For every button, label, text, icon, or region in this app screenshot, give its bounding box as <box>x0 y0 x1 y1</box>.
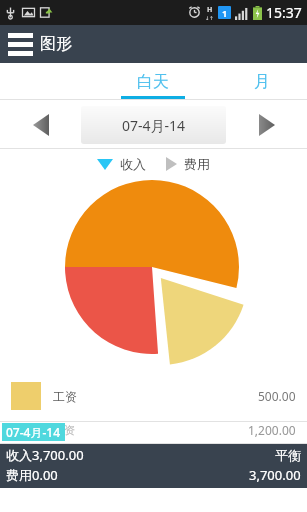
staticText: 1 <box>222 7 228 19</box>
button[interactable]: 费用 <box>162 153 214 175</box>
staticText: 月 <box>254 72 270 92</box>
button[interactable]: 白天 <box>90 63 216 100</box>
staticText: 费用0.00 <box>6 466 58 484</box>
button[interactable]: Open navigation menu <box>0 25 40 63</box>
staticText: 收入3,700.00 <box>6 446 84 464</box>
staticText: 15:37 <box>266 3 302 22</box>
staticText: 投资 <box>53 423 75 437</box>
staticText: H <box>207 5 213 15</box>
button[interactable]: 工资 <box>0 382 307 422</box>
button[interactable]: Previous <box>0 100 81 149</box>
button[interactable]: 收入 <box>93 153 150 175</box>
staticText: 工资 <box>53 389 77 404</box>
staticText: 白天 <box>137 72 169 92</box>
staticText: 3,700.00 <box>249 466 301 484</box>
staticText: 平衡 <box>275 447 301 463</box>
staticText: 图形 <box>40 34 72 54</box>
staticText: 07-4月-14 <box>6 424 61 440</box>
staticText: 500.00 <box>258 388 296 404</box>
button[interactable]: Next <box>226 100 307 149</box>
staticText: ↓↑ <box>205 15 214 21</box>
staticText: 07-4月-14 <box>122 116 186 135</box>
staticText: 费用 <box>184 156 210 172</box>
button[interactable]: 月 <box>216 63 307 100</box>
button[interactable]: 07-4月-14 <box>81 106 226 144</box>
button[interactable]: 投资 <box>0 422 307 444</box>
staticText: 收入 <box>120 156 146 172</box>
staticText: 1,200.00 <box>248 422 296 438</box>
